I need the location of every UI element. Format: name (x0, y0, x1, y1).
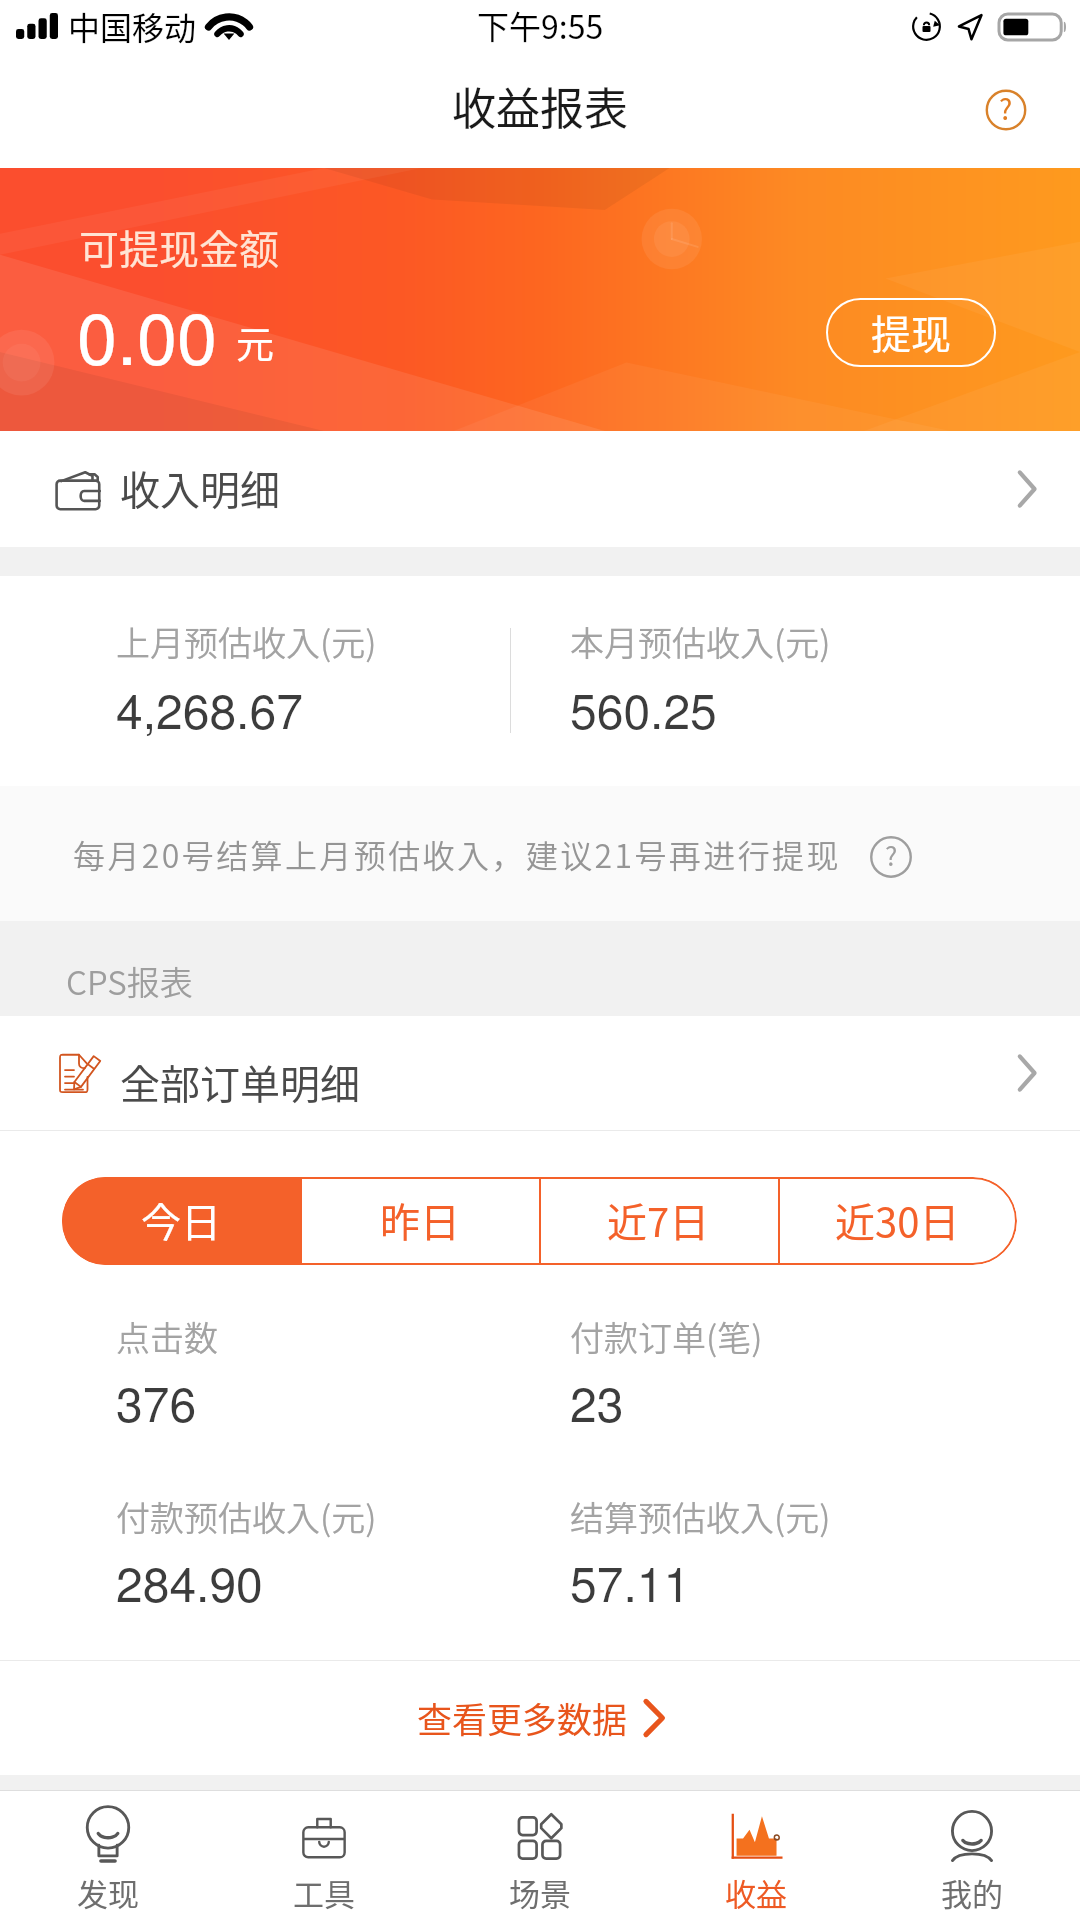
staticText: 收入明细 (120, 459, 280, 517)
button[interactable]: Info (868, 834, 914, 880)
staticText: ? (885, 836, 898, 874)
staticText: 376 (116, 1367, 197, 1436)
staticText: 发现 (77, 1870, 139, 1915)
staticText: 中国移动 (68, 3, 197, 49)
staticText: 4,268.67 (116, 674, 303, 743)
staticText: 我的 (941, 1870, 1003, 1915)
staticText: 昨日 (380, 1191, 460, 1249)
staticText: 可提现金额 (79, 218, 279, 276)
staticText: 560.25 (570, 674, 717, 743)
button[interactable]: 查看更多数据 (0, 1661, 1080, 1775)
staticText: 57.11 (570, 1547, 691, 1616)
staticText: ? (999, 88, 1013, 129)
button[interactable]: 全部订单明细 (0, 1016, 1080, 1130)
staticText: 本月预估收入(元) (570, 617, 831, 666)
staticText: 提现 (871, 303, 951, 361)
staticText: 场景 (509, 1870, 571, 1915)
staticText: 全部订单明细 (120, 1053, 360, 1111)
staticText: 点击数 (116, 1312, 218, 1361)
staticText: 上月预估收入(元) (116, 617, 377, 666)
button[interactable]: Help (982, 86, 1030, 134)
button[interactable]: 我的 (864, 1791, 1080, 1920)
staticText: 付款预估收入(元) (116, 1492, 377, 1541)
staticText: 结算预估收入(元) (570, 1492, 831, 1541)
staticText: 收益报表 (452, 74, 628, 138)
button[interactable]: 今日 (62, 1177, 300, 1265)
button[interactable]: 近7日 (539, 1177, 778, 1265)
button[interactable]: 提现 (826, 298, 996, 367)
staticText: 284.90 (116, 1547, 263, 1616)
button[interactable]: 发现 (0, 1791, 216, 1920)
staticText: 近30日 (835, 1191, 960, 1249)
staticText: 付款订单(笔) (570, 1312, 763, 1361)
staticText: 下午9:55 (477, 2, 604, 48)
staticText: 收益 (725, 1870, 787, 1915)
button[interactable]: 收益 (648, 1791, 864, 1920)
button[interactable]: 近30日 (778, 1177, 1017, 1265)
staticText: 今日 (141, 1191, 221, 1249)
staticText: 23 (570, 1367, 624, 1436)
button[interactable]: 场景 (432, 1791, 648, 1920)
staticText: 元 (236, 314, 275, 369)
button[interactable]: 昨日 (300, 1177, 539, 1265)
staticText: 每月20号结算上月预估收入，建议21号再进行提现 (73, 831, 841, 877)
button[interactable]: 收入明细 (0, 431, 1080, 547)
staticText: 近7日 (607, 1191, 710, 1249)
button[interactable]: 工具 (216, 1791, 432, 1920)
staticText: 查看更多数据 (417, 1692, 628, 1743)
staticText: 工具 (293, 1870, 355, 1915)
staticText: 0.00 (77, 282, 218, 385)
staticText: CPS报表 (66, 957, 193, 1005)
